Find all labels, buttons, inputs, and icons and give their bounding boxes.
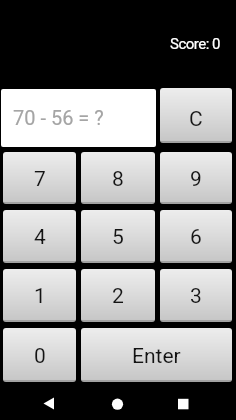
staticText: 9 [190, 167, 202, 192]
staticText: C [189, 107, 203, 132]
button[interactable]: 9 [160, 152, 232, 204]
button[interactable]: 7 [3, 152, 76, 204]
staticText: 7 [34, 167, 46, 192]
button[interactable]: 4 [3, 210, 76, 263]
staticText: 70 - 56 = ? [13, 106, 104, 129]
button[interactable]: 6 [160, 210, 232, 263]
staticText: 4 [34, 225, 46, 250]
staticText: Score: 0 [170, 35, 220, 53]
button[interactable]: 8 [81, 152, 155, 204]
staticText: 3 [190, 284, 202, 309]
button[interactable]: 5 [81, 210, 155, 263]
staticText: 1 [34, 284, 46, 309]
staticText: Enter [132, 344, 181, 369]
button[interactable]: 70 - 56 = ? [1, 89, 156, 147]
button[interactable]: 1 [3, 269, 76, 322]
button[interactable]: 0 [3, 328, 76, 382]
staticText: 2 [112, 284, 124, 309]
button[interactable]: 2 [81, 269, 155, 322]
staticText: 5 [112, 225, 124, 250]
staticText: 8 [112, 167, 124, 192]
button[interactable]: C [160, 88, 232, 143]
staticText: 0 [34, 344, 46, 369]
button[interactable]: Enter [81, 328, 232, 382]
button[interactable]: 3 [160, 269, 232, 322]
staticText: 6 [190, 225, 202, 250]
